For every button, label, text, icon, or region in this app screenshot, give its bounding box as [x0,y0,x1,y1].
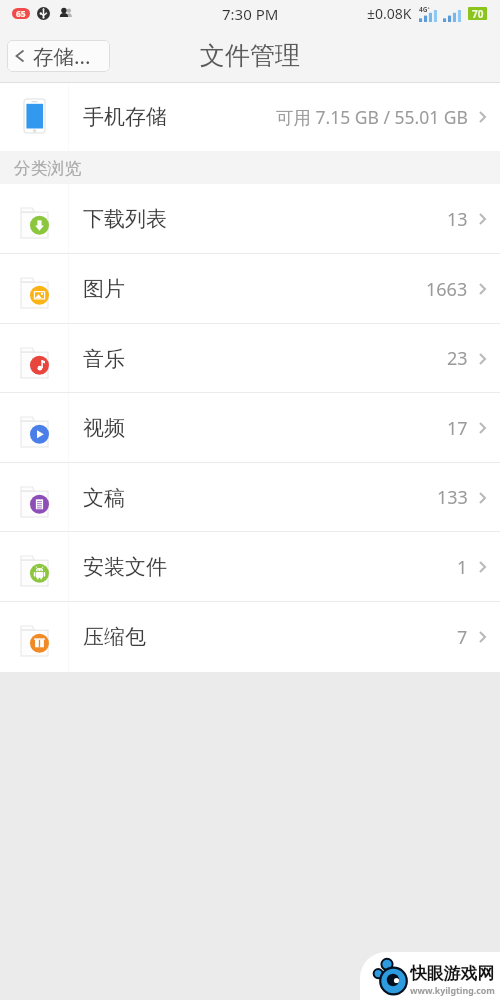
staticText: ±0.08K [367,4,412,23]
staticText: 1663 [426,277,468,302]
staticText: 133 [437,485,468,510]
staticText: 17 [447,416,468,441]
staticText: 手机存储 [83,104,167,130]
staticText: 视频 [83,415,125,441]
staticText: 7:30 PM [222,4,279,24]
button[interactable]: 文稿 [0,463,500,532]
button[interactable]: 下载列表 [0,184,500,254]
staticText: 4G⁺ [419,5,430,14]
staticText: 快眼游戏网 [410,963,494,984]
button[interactable]: 图片 [0,254,500,324]
staticText: 下载列表 [83,206,167,232]
button[interactable]: 返回 存储 [7,40,110,72]
button[interactable]: 视频 [0,393,500,463]
button[interactable]: 音乐 [0,324,500,393]
staticText: 13 [447,207,468,232]
staticText: 文件管理 [200,40,300,71]
staticText: 7 [457,625,468,650]
staticText: 文稿 [83,485,125,511]
staticText: 可用 7.15 GB / 55.01 GB [276,105,468,129]
staticText: 图片 [83,276,125,302]
staticText: 23 [447,346,468,371]
button[interactable]: 安装文件 [0,532,500,602]
staticText: 70 [472,7,484,20]
staticText: 音乐 [83,346,125,372]
staticText: 分类浏览 [14,158,82,179]
button[interactable]: 压缩包 [0,602,500,672]
staticText: 1 [457,555,468,580]
staticText: www.kyilgting.com [410,985,495,997]
staticText: 65 [16,8,26,19]
button[interactable]: 手机存储 [0,83,500,151]
staticText: 安装文件 [83,554,167,580]
staticText: 存储... [33,42,91,70]
staticText: 压缩包 [83,624,146,650]
